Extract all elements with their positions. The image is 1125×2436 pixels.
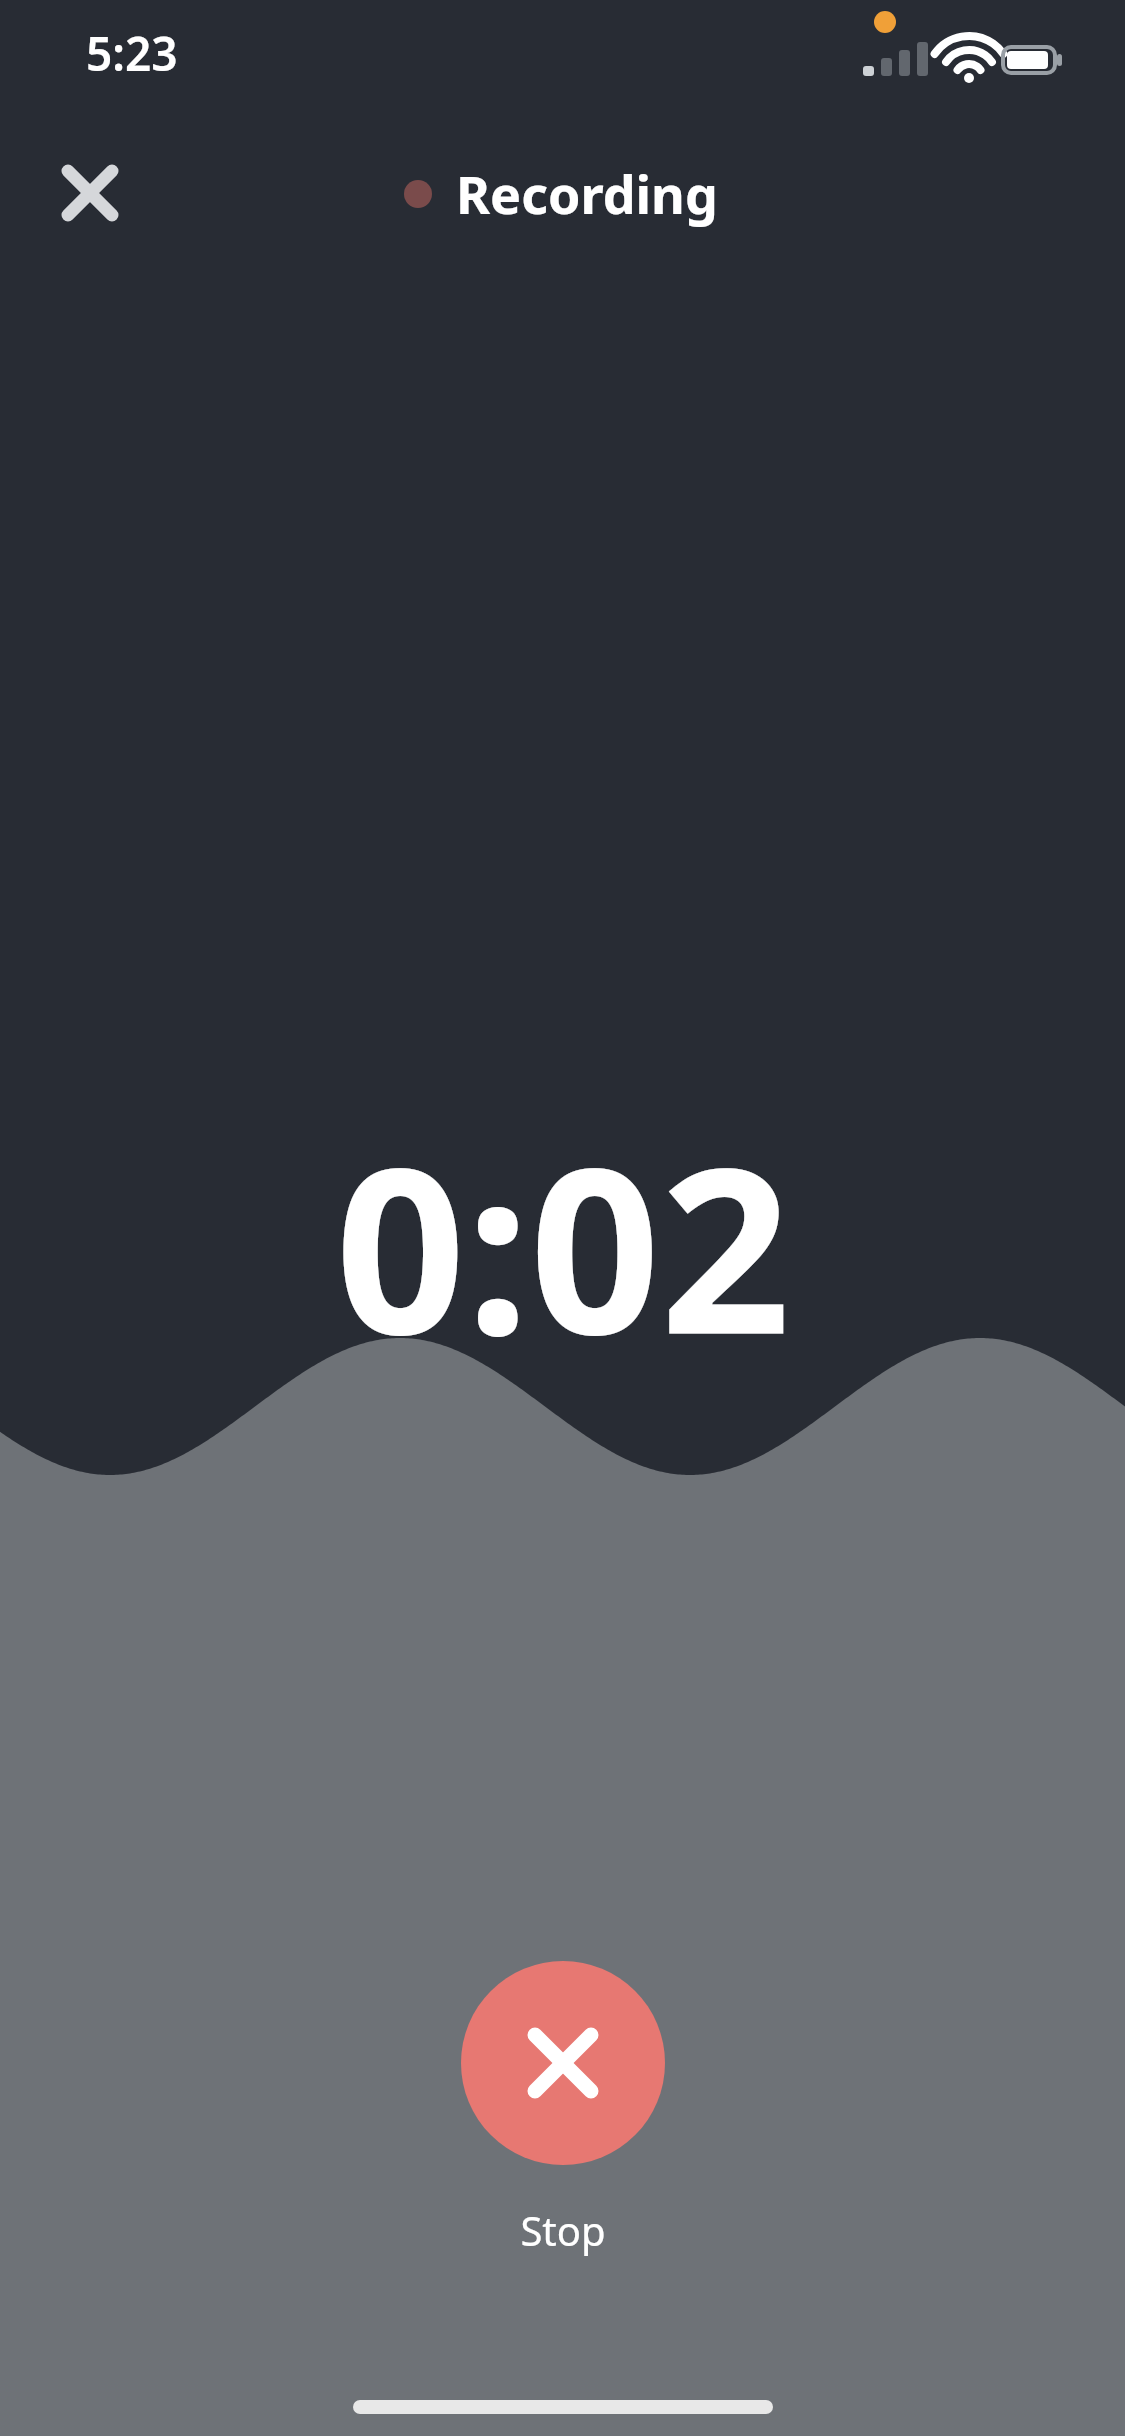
staticText: Stop (520, 2203, 606, 2257)
staticText: Recording (456, 158, 718, 229)
staticText: 5:23 (86, 22, 178, 85)
button[interactable]: Close (36, 139, 144, 247)
button[interactable]: Stop recording (461, 1961, 665, 2165)
staticText: 0:02 (335, 1090, 791, 1401)
